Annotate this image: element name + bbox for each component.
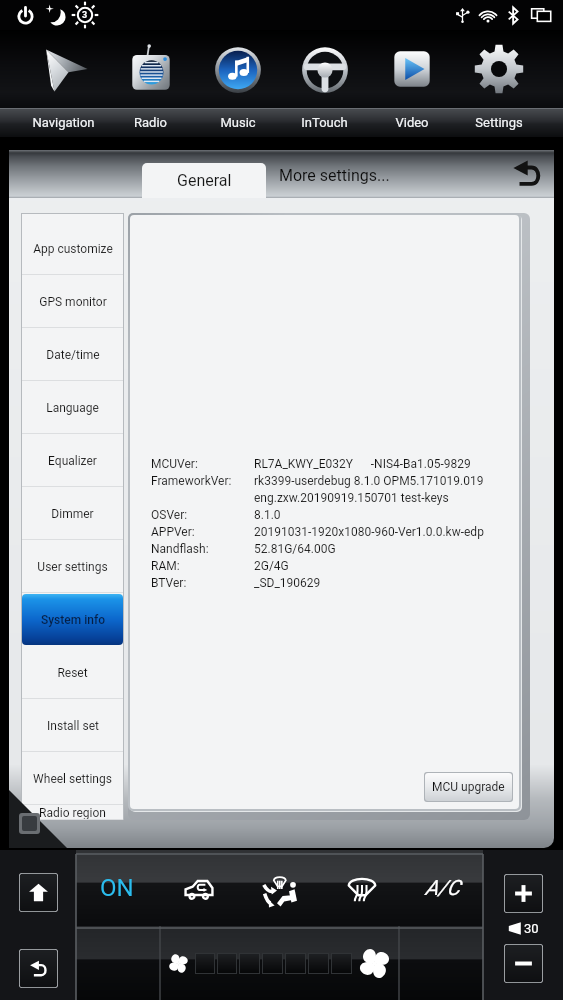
button[interactable]: Brightness [70,0,100,30]
staticText: MCUVer: [151,457,198,471]
staticText: Reset [57,666,88,680]
button[interactable]: Air flow mode [240,850,321,926]
button[interactable]: ON [76,850,158,926]
staticText: Radio [134,115,167,130]
staticText: FrameworkVer: [151,474,232,488]
button[interactable]: Equalizer [22,434,123,487]
button[interactable]: Dimmer [22,487,123,540]
button[interactable]: A/C [402,850,483,926]
button[interactable]: Navigation [20,30,107,108]
staticText: A/C [425,876,460,901]
button[interactable]: General [142,163,266,198]
staticText: eng.zxw.20190919.150701 test-keys [254,491,449,505]
staticText: Settings [475,115,523,130]
button[interactable]: User settings [22,540,123,593]
button[interactable]: Language [22,381,123,434]
button[interactable]: Volume down [504,944,543,983]
staticText: RAM: [151,559,180,573]
staticText: BTVer: [151,576,187,590]
button[interactable]: Recirculation [158,850,240,926]
button[interactable]: Radio [107,30,194,108]
staticText: User settings [37,560,108,574]
button[interactable]: Radio region [22,805,123,820]
button[interactable]: App customize [22,222,123,275]
staticText: Nandflash: [151,542,209,556]
staticText: RL7A_KWY_E032Y -NIS4-Ba1.05-9829 [254,457,471,471]
staticText: InTouch [301,115,348,130]
staticText: 8.1.0 [254,508,281,522]
staticText: Install set [47,719,99,733]
staticText: MCU upgrade [432,780,505,794]
staticText: OSVer: [151,508,188,522]
staticText: App customize [33,242,113,256]
staticText: 2G/4G [254,559,289,573]
button[interactable]: Fan speed [160,926,399,1000]
staticText: Language [46,401,99,415]
button[interactable]: InTouch [281,30,368,108]
button[interactable]: Power [10,0,40,30]
staticText: Music [220,115,256,130]
staticText: GPS monitor [39,295,107,309]
staticText: ON [100,874,134,902]
staticText: Radio region [39,806,106,820]
staticText: 30 [524,921,539,936]
button[interactable]: Settings [455,30,542,108]
button[interactable]: More settings... [266,150,446,198]
button[interactable]: Reset [22,646,123,699]
button[interactable]: Music [194,30,281,108]
staticText: Equalizer [48,454,97,468]
staticText: Video [395,115,429,130]
button[interactable]: Home [19,873,58,912]
button[interactable]: Install set [22,699,123,752]
button[interactable]: GPS monitor [22,275,123,328]
button[interactable]: Video [368,30,455,108]
staticText: General [177,171,232,190]
staticText: 3 [82,10,88,21]
button[interactable]: Date/time [22,328,123,381]
button[interactable]: Wheel settings [22,752,123,805]
button[interactable]: Defrost [321,850,402,926]
staticText: System info [41,613,105,627]
button[interactable]: Night mode [40,0,70,30]
button[interactable]: Back [19,949,58,988]
staticText: 20191031-1920x1080-960-Ver1.0.0.kw-edp [254,525,484,539]
staticText: rk3399-userdebug 8.1.0 OPM5.171019.019 [254,474,484,488]
staticText: Navigation [32,115,95,130]
staticText: Dimmer [51,507,94,521]
staticText: Wheel settings [33,772,112,786]
staticText: APPVer: [151,525,195,539]
staticText: More settings... [279,166,390,185]
button[interactable]: System info [22,594,123,645]
button[interactable]: Volume up [504,874,543,913]
staticText: Date/time [46,348,100,362]
staticText: 52.81G/64.00G [254,542,336,556]
staticText: _SD_190629 [254,576,321,590]
button[interactable]: MCU upgrade [425,773,512,801]
button[interactable]: Back [510,156,544,190]
